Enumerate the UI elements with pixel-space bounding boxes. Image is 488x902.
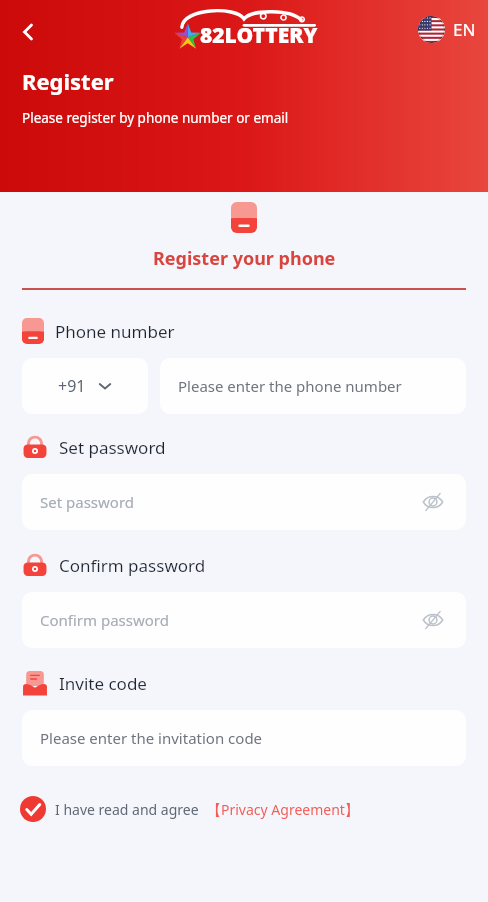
button[interactable]: EN bbox=[412, 12, 482, 47]
staticText: Register bbox=[22, 66, 114, 96]
button[interactable]: 82Lottery bbox=[160, 6, 328, 52]
button[interactable]: Back bbox=[4, 8, 52, 56]
staticText: Set password bbox=[40, 492, 418, 512]
staticText: I have read and agree bbox=[55, 800, 199, 819]
staticText: Invite code bbox=[59, 672, 147, 695]
button[interactable]: Set password bbox=[22, 474, 466, 530]
staticText: 82LOTTERY bbox=[200, 21, 318, 50]
button[interactable]: I have read and agree bbox=[20, 794, 468, 824]
staticText: Confirm password bbox=[59, 554, 206, 577]
staticText: Please enter the phone number bbox=[178, 376, 402, 396]
staticText: Please register by phone number or email bbox=[22, 109, 289, 127]
button[interactable]: +91 bbox=[22, 358, 148, 414]
staticText: 【Privacy Agreement】 bbox=[207, 800, 359, 819]
staticText: EN bbox=[453, 18, 476, 41]
staticText: Phone number bbox=[55, 320, 175, 343]
button[interactable]: Please enter the invitation code bbox=[22, 710, 466, 766]
staticText: +91 bbox=[58, 375, 86, 397]
staticText: Register your phone bbox=[153, 246, 336, 271]
staticText: Please enter the invitation code bbox=[40, 728, 263, 748]
button[interactable]: Confirm password bbox=[22, 592, 466, 648]
staticText: Set password bbox=[59, 436, 166, 459]
staticText: Confirm password bbox=[40, 610, 418, 630]
button[interactable]: Show password bbox=[418, 605, 448, 635]
button[interactable]: Show password bbox=[418, 487, 448, 517]
button[interactable]: Please enter the phone number bbox=[160, 358, 466, 414]
